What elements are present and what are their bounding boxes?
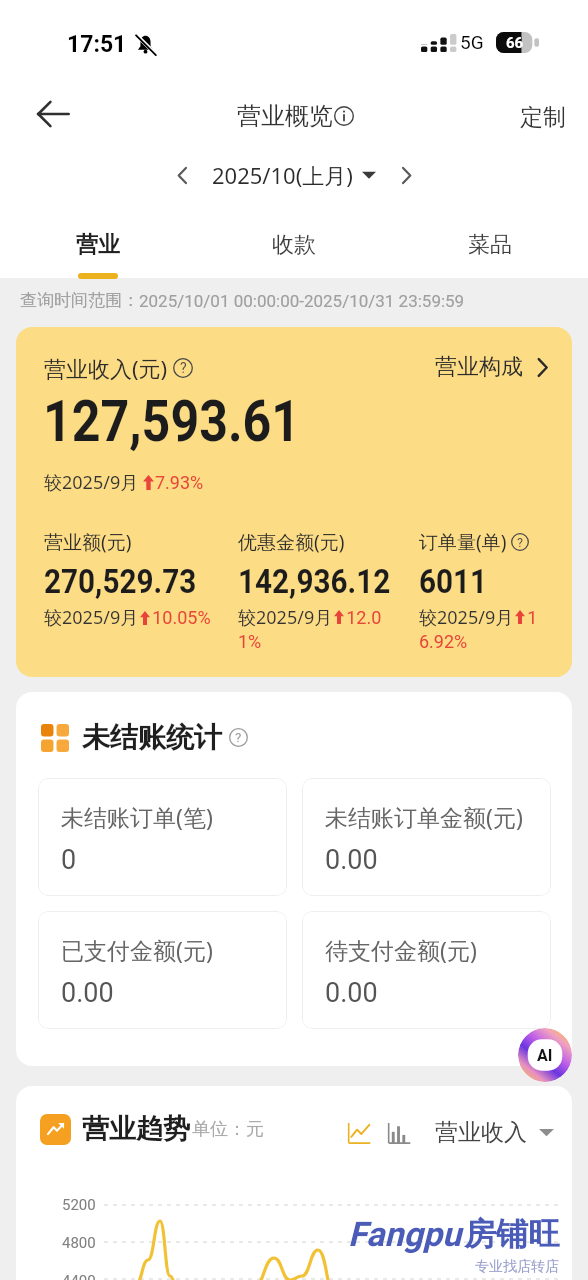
button[interactable]: 菜品: [392, 218, 588, 278]
button[interactable]: 未结账订单金额(元): [302, 778, 551, 896]
button[interactable]: 返回: [29, 90, 77, 138]
button[interactable]: 收款: [196, 218, 392, 278]
staticText: 6011: [419, 562, 487, 601]
staticText: 营业收入(元): [44, 353, 168, 383]
staticText: 营业额(元): [44, 529, 132, 555]
staticText: 菜品: [468, 231, 512, 259]
staticText: 17:51: [67, 31, 127, 58]
staticText: 7.93%: [155, 472, 204, 493]
button[interactable]: 营业收入: [435, 1118, 554, 1147]
staticText: 收款: [272, 231, 316, 259]
button[interactable]: 营业: [0, 218, 196, 278]
staticText: 4800: [62, 1234, 96, 1252]
button[interactable]: 未结账订单(笔): [38, 778, 287, 896]
staticText: 较2025/9月: [44, 470, 139, 495]
staticText: ?: [180, 360, 187, 376]
staticText: 4400: [62, 1272, 96, 1280]
staticText: 订单量(单): [419, 529, 507, 555]
staticText: 较2025/9月^1​6​.​9​2​%: [419, 605, 543, 653]
button[interactable]: 定制: [520, 103, 566, 132]
button[interactable]: 柱状图: [387, 1121, 411, 1145]
staticText: 营业收入: [435, 1118, 527, 1147]
staticText: 5200: [62, 1196, 96, 1214]
staticText: 营业: [76, 231, 120, 259]
staticText: AI: [537, 1046, 553, 1065]
staticText: 0.00: [325, 977, 378, 1009]
button[interactable]: 已支付金额(元): [38, 911, 287, 1029]
staticText: 定制: [520, 103, 566, 132]
staticText: 142,936.12: [238, 562, 391, 601]
staticText: 未结账订单金额(元): [325, 801, 523, 832]
staticText: 较2025/9月^1​0​.​0​5​%: [44, 605, 211, 630]
staticText: 未结账统计: [82, 720, 222, 755]
staticText: 优惠金额(元): [238, 529, 345, 555]
staticText: 待支付金额(元): [325, 934, 477, 965]
staticText: 0: [61, 844, 77, 876]
staticText: 较2025/9月^1​2​.​0​1​%: [238, 605, 391, 653]
staticText: 2025/10(上月): [212, 160, 353, 190]
staticText: 未结账订单(笔): [61, 801, 213, 832]
staticText: 房铺旺: [464, 1214, 560, 1254]
staticText: ?: [235, 730, 242, 746]
staticText: 66: [506, 34, 524, 52]
button[interactable]: 上一月: [162, 155, 202, 195]
staticText: 营业构成: [435, 353, 523, 381]
staticText: 5G: [460, 31, 484, 53]
staticText: 270,529.73: [44, 562, 197, 601]
staticText: 专业找店转店: [475, 1258, 559, 1276]
staticText: 0.00: [325, 844, 378, 876]
staticText: 已支付金额(元): [61, 934, 213, 965]
button[interactable]: 下一月: [386, 155, 426, 195]
staticText: 单位：元: [192, 1118, 264, 1141]
staticText: 0.00: [61, 977, 114, 1009]
staticText: 2025/10/01 00:00:00-2025/10/31 23:59:59: [139, 291, 465, 311]
staticText: ?: [517, 535, 523, 550]
staticText: 营业趋势: [82, 1112, 190, 1146]
staticText: 127,593.61: [43, 388, 301, 455]
staticText: 查询时间范围：: [20, 290, 139, 311]
button[interactable]: 营业构成: [435, 353, 553, 381]
staticText: 营业概览: [237, 101, 333, 131]
staticText: Fangpu: [348, 1214, 461, 1254]
button[interactable]: AI 助手: [518, 1028, 572, 1082]
button[interactable]: 待支付金额(元): [302, 911, 551, 1029]
button[interactable]: 折线图: [347, 1121, 371, 1145]
